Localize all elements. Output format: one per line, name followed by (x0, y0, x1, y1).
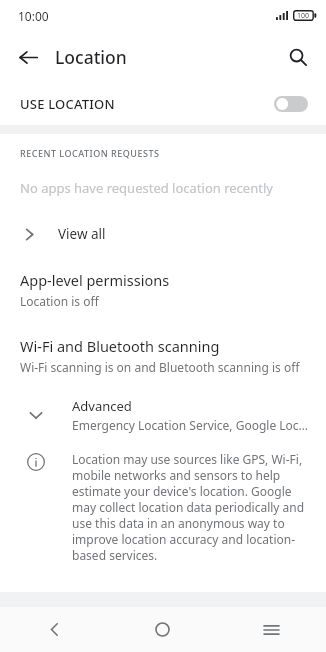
staticText: Wi-Fi and Bluetooth scanning (20, 336, 220, 356)
staticText: View all (58, 225, 106, 243)
staticText: USE LOCATION (20, 95, 274, 113)
button[interactable]: View all (0, 219, 326, 249)
staticText: RECENT LOCATION REQUESTS (20, 147, 160, 159)
button[interactable]: Back (8, 37, 48, 77)
button[interactable]: Home (108, 607, 217, 652)
button[interactable]: Search (278, 37, 318, 77)
staticText: Emergency Location Service, Google Locat… (72, 417, 310, 433)
button[interactable]: Recent apps (217, 607, 326, 652)
button[interactable]: Wi-Fi and Bluetooth scanning (0, 336, 326, 375)
button[interactable]: App-level permissions (0, 270, 326, 309)
staticText: Location (55, 45, 127, 69)
button[interactable]: Advanced (0, 397, 326, 433)
staticText: Location is off (20, 293, 99, 309)
staticText: Advanced (72, 397, 132, 415)
staticText: No apps have requested location recently (20, 179, 273, 197)
button[interactable]: Back (0, 607, 108, 652)
staticText: 100 (297, 11, 310, 21)
staticText: App-level permissions (20, 270, 170, 290)
button[interactable]: USE LOCATION (0, 83, 326, 125)
staticText: Location may use sources like GPS, Wi-Fi… (72, 451, 308, 563)
staticText: Wi-Fi scanning is on and Bluetooth scann… (20, 359, 300, 375)
staticText: 10:00 (18, 8, 49, 24)
